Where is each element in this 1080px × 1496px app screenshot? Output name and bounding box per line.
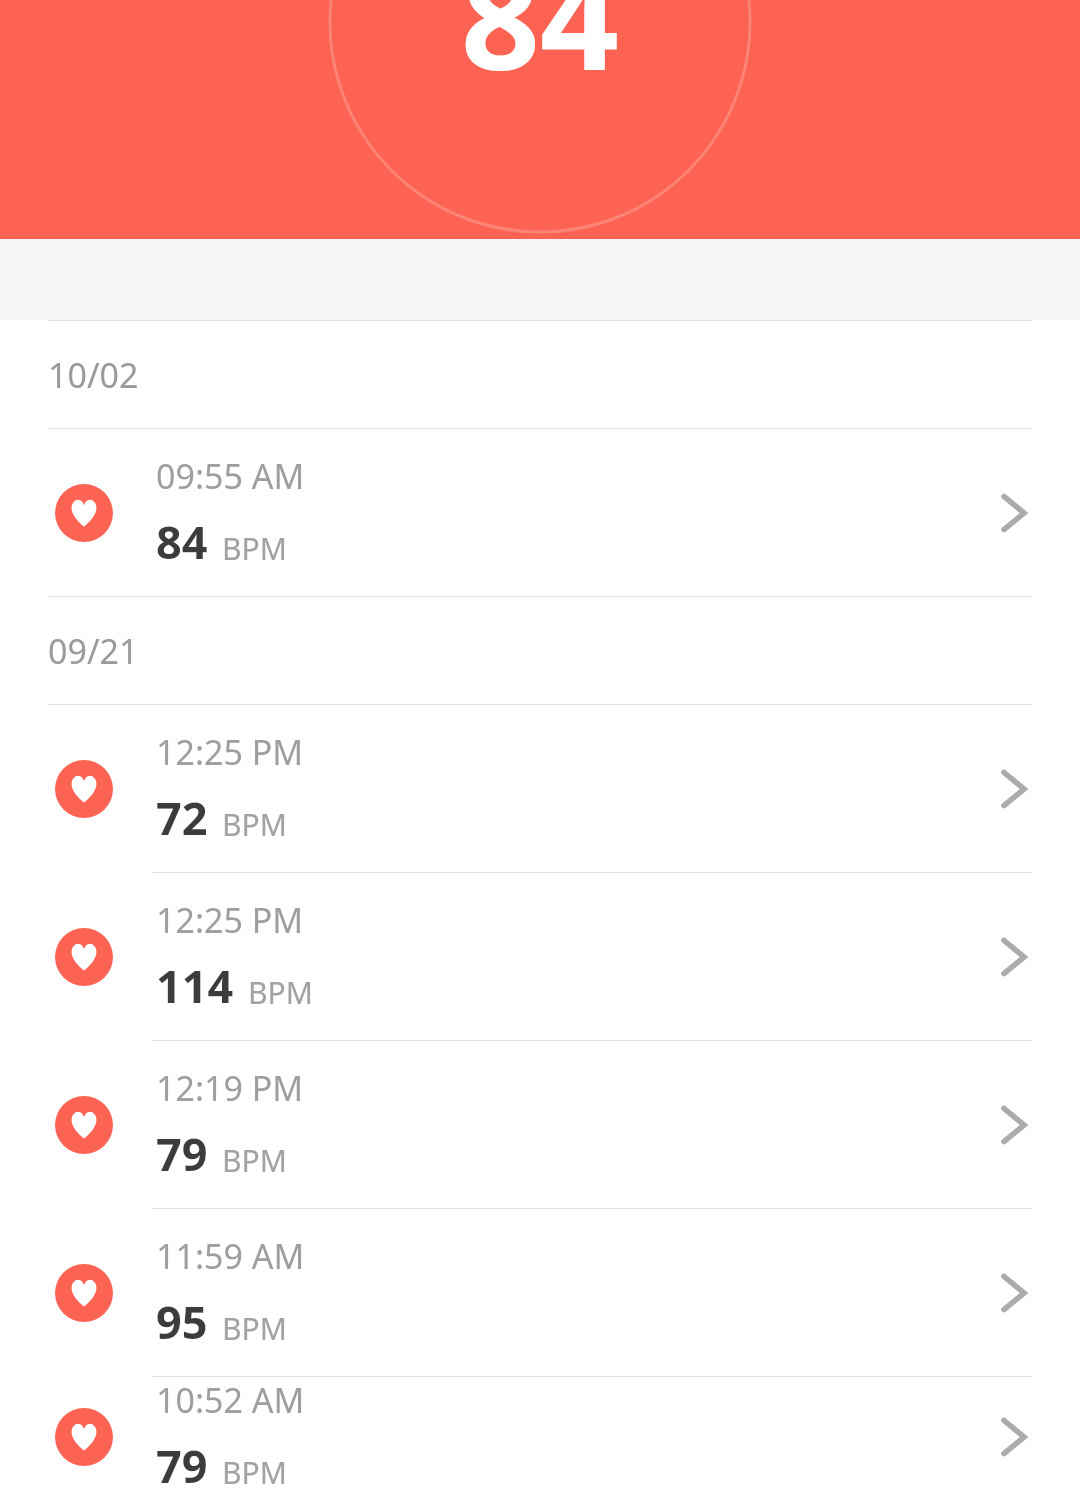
button[interactable]: 12:25 PM: [0, 705, 1080, 872]
staticText: 79: [156, 1123, 208, 1184]
staticText: 09:55 AM: [156, 453, 305, 499]
staticText: 84: [156, 511, 208, 572]
staticText: BPM: [222, 1308, 287, 1349]
button[interactable]: 12:25 PM: [0, 873, 1080, 1040]
other: View details: [996, 1267, 1032, 1319]
staticText: BPM: [222, 1452, 287, 1493]
button[interactable]: 09:55 AM: [0, 429, 1080, 596]
other: View details: [996, 487, 1032, 539]
other: View details: [996, 763, 1032, 815]
button[interactable]: 10:52 AM: [0, 1377, 1080, 1496]
staticText: 72: [156, 787, 208, 848]
staticText: 10:52 AM: [156, 1377, 305, 1423]
staticText: 12:19 PM: [156, 1065, 304, 1111]
other: View details: [996, 1099, 1032, 1151]
staticText: BPM: [222, 1140, 287, 1181]
button[interactable]: 09/21: [0, 597, 1080, 704]
staticText: 114: [156, 955, 234, 1016]
staticText: BPM: [222, 804, 287, 845]
staticText: BPM: [248, 972, 313, 1013]
staticText: 12:25 PM: [156, 897, 304, 943]
staticText: 11:59 AM: [156, 1233, 305, 1279]
staticText: 12:25 PM: [156, 729, 304, 775]
staticText: 79: [156, 1435, 208, 1496]
staticText: BPM: [222, 528, 287, 569]
staticText: 09/21: [48, 628, 139, 674]
button[interactable]: 10/02: [0, 321, 1080, 428]
other: View details: [996, 1411, 1032, 1463]
staticText: 10/02: [48, 352, 139, 398]
staticText: 95: [156, 1291, 208, 1352]
other: View details: [996, 931, 1032, 983]
button[interactable]: 12:19 PM: [0, 1041, 1080, 1208]
staticText: 84: [461, 0, 619, 110]
button[interactable]: 11:59 AM: [0, 1209, 1080, 1376]
